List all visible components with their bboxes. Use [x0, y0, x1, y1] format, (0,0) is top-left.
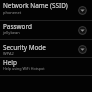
staticText: Help using WiFi Hotspot	[3, 66, 45, 71]
staticText: Security Mode	[3, 43, 46, 52]
staticText: Help	[3, 58, 17, 67]
staticText: Password	[3, 22, 32, 31]
staticText: Network Name (SSID)	[3, 1, 68, 10]
button[interactable]: Edit network name	[78, 6, 87, 15]
button[interactable]: Change security mode	[78, 45, 87, 54]
button[interactable]: Password	[0, 21, 92, 40]
staticText: jellybean	[3, 30, 20, 35]
button[interactable]: Security Mode	[0, 40, 92, 58]
button[interactable]: Help	[0, 58, 92, 76]
button[interactable]: Edit password	[78, 26, 87, 35]
button[interactable]: Network Name (SSID)	[0, 0, 92, 21]
staticText: WPA2	[3, 51, 14, 56]
staticText: phonenet	[3, 10, 22, 15]
